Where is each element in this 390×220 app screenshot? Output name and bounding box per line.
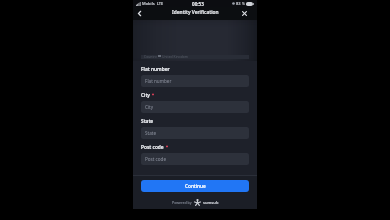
staticText: sumsub — [203, 200, 219, 205]
button[interactable]: Continue — [141, 180, 249, 192]
staticText: Post code — [141, 144, 164, 151]
staticText: Post code — [145, 156, 167, 162]
button[interactable]: Close — [239, 8, 249, 18]
button[interactable]: Flat number — [141, 75, 249, 87]
staticText: % — [242, 1, 245, 6]
staticText: Flat number — [145, 78, 172, 84]
staticText: Country — [144, 54, 157, 58]
button[interactable]: Post code — [141, 153, 249, 165]
staticText: City — [141, 92, 150, 99]
staticText: 83 — [236, 1, 241, 6]
button[interactable]: Country — [141, 55, 249, 59]
staticText: Powered by — [172, 200, 192, 205]
staticText: City — [145, 104, 154, 110]
button[interactable]: City — [141, 101, 249, 113]
staticText: Continue — [185, 183, 206, 189]
button[interactable]: State — [141, 127, 249, 139]
staticText: Flat number — [141, 66, 170, 73]
staticText: State — [141, 118, 154, 125]
staticText: United Kingdom — [162, 54, 189, 58]
staticText: State — [145, 130, 157, 136]
staticText: Identity Verification — [172, 9, 219, 16]
button[interactable]: Back — [134, 8, 144, 18]
staticText: 00:53 — [192, 1, 204, 7]
staticText: Mobils LTE — [142, 1, 164, 6]
